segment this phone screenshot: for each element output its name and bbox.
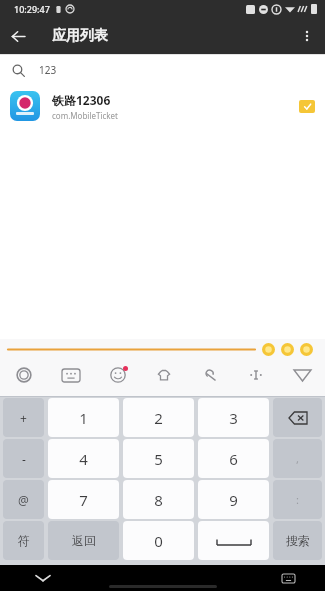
button[interactable]: Hide keyboard xyxy=(30,565,56,591)
button[interactable]: 5 xyxy=(123,439,194,478)
button[interactable]: 1 xyxy=(48,398,119,437)
button[interactable]: 3 xyxy=(198,398,269,437)
button[interactable]: Back xyxy=(0,18,36,54)
button[interactable]: Collapse xyxy=(279,359,325,391)
staticText: com.MobileTicket xyxy=(52,110,118,121)
staticText: 1 xyxy=(79,408,88,428)
button[interactable]: Selected xyxy=(299,100,315,113)
button[interactable]: Keyboard xyxy=(47,359,94,391)
staticText: : xyxy=(296,492,299,507)
button[interactable]: Space xyxy=(198,521,269,560)
staticText: 0 xyxy=(154,531,163,551)
staticText: 8 xyxy=(154,490,163,510)
button[interactable]: 返回 xyxy=(48,521,119,560)
staticText: 7 xyxy=(79,490,88,510)
staticText: 4 xyxy=(79,449,88,469)
button[interactable]: Switch keyboard xyxy=(275,565,301,591)
button[interactable]: 8 xyxy=(123,480,194,519)
staticText: 应用列表 xyxy=(52,27,108,45)
button[interactable]: 4 xyxy=(48,439,119,478)
button[interactable]: 123 xyxy=(0,55,325,85)
button[interactable]: Emoji xyxy=(94,359,141,391)
button[interactable]: 9 xyxy=(198,480,269,519)
staticText: 5 xyxy=(154,449,163,469)
staticText: 10:29:47 xyxy=(14,3,50,15)
button[interactable]: 搜索 xyxy=(273,521,322,560)
button[interactable]: + xyxy=(3,398,44,437)
staticText: 搜索 xyxy=(286,533,310,548)
staticText: 3 xyxy=(229,408,238,428)
button[interactable]: 2 xyxy=(123,398,194,437)
staticText: 符 xyxy=(18,533,30,548)
button[interactable]: 铁路12306 xyxy=(0,85,325,127)
button[interactable]: 0 xyxy=(123,521,194,560)
button[interactable]: - xyxy=(3,439,44,478)
button[interactable]: Handwriting xyxy=(187,359,233,391)
staticText: - xyxy=(22,451,26,467)
button[interactable]: Settings xyxy=(0,359,47,391)
staticText: 返回 xyxy=(72,533,96,548)
staticText: + xyxy=(20,410,27,426)
staticText: 6 xyxy=(229,449,238,469)
button[interactable]: @ xyxy=(3,480,44,519)
button[interactable]: 7 xyxy=(48,480,119,519)
staticText: , xyxy=(296,451,299,466)
staticText: 9 xyxy=(229,490,238,510)
button[interactable]: 6 xyxy=(198,439,269,478)
staticText: 2 xyxy=(154,408,163,428)
button[interactable]: 符 xyxy=(3,521,44,560)
staticText: @ xyxy=(18,492,29,508)
button[interactable]: Cursor xyxy=(233,359,279,391)
button[interactable]: Theme xyxy=(141,359,187,391)
staticText: 123 xyxy=(39,63,57,77)
staticText: 铁路12306 xyxy=(52,92,111,108)
button[interactable]: More options xyxy=(289,18,325,54)
button[interactable]: Backspace xyxy=(273,398,322,437)
